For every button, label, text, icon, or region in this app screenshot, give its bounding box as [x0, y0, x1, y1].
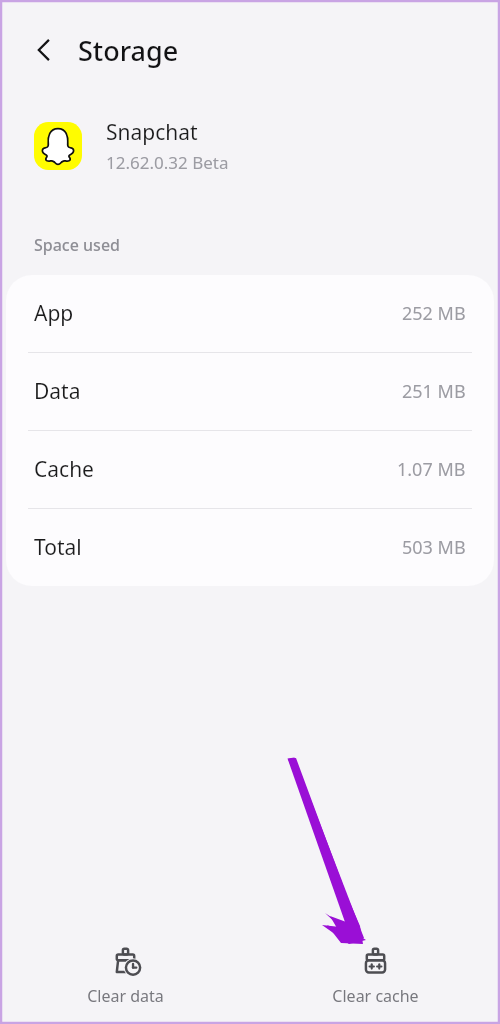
other: Clear cache — [361, 947, 390, 976]
staticText: Cache — [34, 455, 94, 484]
staticText: 503 MB — [402, 535, 466, 560]
button[interactable]: Data — [6, 353, 494, 430]
staticText: Storage — [78, 32, 179, 69]
button[interactable]: Back — [22, 28, 66, 72]
button[interactable]: Cache — [6, 431, 494, 508]
staticText: Data — [34, 377, 81, 406]
staticText: Space used — [34, 234, 120, 256]
staticText: 251 MB — [402, 379, 466, 404]
button[interactable]: Clear data — [0, 941, 250, 1013]
staticText: 1.07 MB — [397, 457, 466, 482]
staticText: Total — [34, 533, 82, 562]
staticText: Clear cache — [332, 985, 419, 1007]
staticText: 252 MB — [402, 301, 466, 326]
button[interactable]: Total — [6, 509, 494, 586]
button[interactable]: Clear cache — [250, 941, 500, 1013]
staticText: Snapchat — [106, 118, 198, 147]
staticText: Clear data — [87, 985, 164, 1007]
staticText: 12.62.0.32 Beta — [106, 151, 229, 174]
button[interactable]: App — [6, 275, 494, 352]
staticText: App — [34, 299, 74, 328]
other: Clear data — [111, 947, 140, 976]
